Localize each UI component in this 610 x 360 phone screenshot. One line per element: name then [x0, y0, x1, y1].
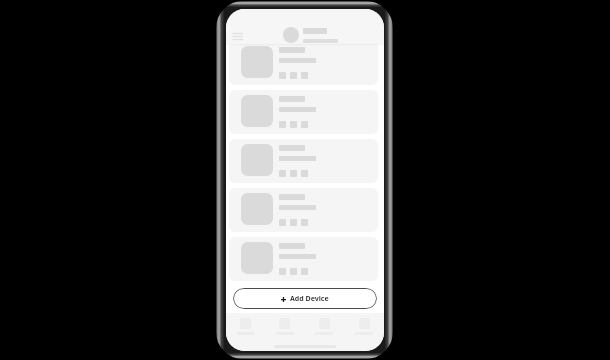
button[interactable]: [229, 90, 378, 134]
button[interactable]: Menu: [226, 25, 245, 45]
button[interactable]: Tab: [344, 318, 384, 335]
button[interactable]: Tab: [265, 318, 304, 335]
button[interactable]: [229, 237, 378, 281]
button[interactable]: Tab: [226, 318, 265, 335]
staticText: Add Device: [290, 294, 329, 304]
button[interactable]: Add Device: [233, 288, 377, 309]
button[interactable]: [229, 188, 378, 232]
button[interactable]: [229, 41, 378, 85]
button[interactable]: Tab: [304, 318, 344, 335]
button[interactable]: [229, 139, 378, 183]
